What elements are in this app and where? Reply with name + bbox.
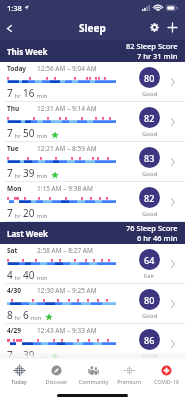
staticText: 7 [7,206,13,220]
staticText: Community [78,378,109,385]
staticText: min [35,354,48,362]
button[interactable]: COVID-19 [148,359,184,390]
staticText: This Week [7,46,48,57]
staticText: 80 [144,72,155,84]
staticText: 12:31 AM – 9:14 AM [37,104,97,113]
staticText: 12:43 AM – 9:33 AM [37,326,97,335]
staticText: Today [7,64,27,73]
button[interactable]: Today [1,359,37,390]
staticText: 4/30 [7,286,21,295]
staticText: Good [142,130,158,138]
staticText: Discover [45,378,68,385]
button[interactable]: Add sleep log [164,19,181,36]
staticText: Today [11,378,27,385]
staticText: 7 hr 31 min [137,51,178,61]
staticText: 83 [144,152,155,164]
staticText: hr [13,132,23,140]
staticText: 20 [23,206,35,220]
staticText: Tue [7,144,19,153]
staticText: 1:15 AM – 9:38 AM [37,184,93,193]
staticText: hr [13,212,23,220]
staticText: hr [13,172,23,180]
staticText: 82 [144,112,155,124]
staticText: min [35,92,48,100]
button[interactable]: Premium [111,359,147,390]
button[interactable]: Thu [0,102,185,142]
staticText: 7 [7,86,13,100]
staticText: Last Week [7,228,48,239]
button[interactable]: Settings [146,19,163,36]
staticText: min [29,314,42,322]
staticText: Good [142,170,158,178]
staticText: 39 [23,348,35,362]
staticText: 12:30 AM – 9:25 AM [37,286,97,295]
button[interactable]: Tue [0,142,185,182]
staticText: Good [142,352,158,360]
staticText: COVID-19 [154,378,179,385]
staticText: 12:56 AM – 9:04 AM [37,64,97,73]
staticText: min [35,132,48,140]
staticText: 82 [144,192,155,204]
staticText: Sleep [79,21,106,35]
staticText: 16 [23,86,35,100]
button[interactable]: Back [1,20,17,36]
button[interactable]: 4/30 [0,284,185,324]
staticText: Premium [117,378,141,385]
staticText: 40 [23,268,35,282]
staticText: 6 [23,308,29,322]
staticText: 6 hr 46 min [137,233,178,243]
staticText: 12:21 AM – 8:59 AM [37,144,97,153]
staticText: hr [13,274,23,282]
staticText: 7 [7,166,13,180]
staticText: 8 [7,308,13,322]
button[interactable]: Mon [0,182,185,222]
staticText: hr [13,92,23,100]
staticText: 7 [7,126,13,140]
staticText: hr [13,314,23,322]
staticText: 76 Sleep Score [126,223,178,233]
staticText: Mon [7,184,22,193]
staticText: Sat [7,246,18,255]
staticText: 39 [23,166,35,180]
staticText: hr [13,354,23,362]
button[interactable]: Today [0,62,185,102]
staticText: Thu [7,104,20,113]
staticText: 4 [7,268,13,282]
button[interactable]: Sat [0,244,185,284]
staticText: min [35,212,48,220]
staticText: 82 Sleep Score [126,41,178,51]
staticText: min [35,172,48,180]
staticText: Good [142,210,158,218]
button[interactable]: Discover [38,359,74,390]
staticText: Good [142,312,158,320]
staticText: 86 [144,334,155,346]
staticText: 80 [144,294,155,306]
staticText: 2:58 AM – 8:27 AM [37,246,93,255]
staticText: Good [142,90,158,98]
staticText: 50 [23,126,35,140]
staticText: 64 [144,254,155,266]
staticText: 7 [7,348,13,362]
staticText: min [35,274,48,282]
staticText: 4/29 [7,326,21,335]
button[interactable]: 4/29 [0,324,185,364]
staticText: 1:38 [7,3,22,13]
staticText: Fair [144,272,155,280]
button[interactable]: Community [75,359,111,390]
